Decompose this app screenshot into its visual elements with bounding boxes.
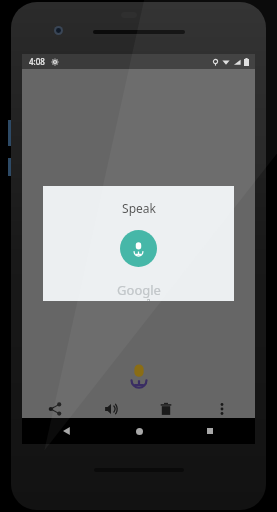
button[interactable]: Share [40,394,70,424]
staticText: 4:08 [29,56,45,67]
button[interactable]: Volume [96,394,126,424]
button[interactable]: Recent apps [199,420,221,442]
button[interactable]: Home [128,420,150,442]
button[interactable]: Delete [151,394,181,424]
button[interactable]: Speak into microphone [120,230,157,267]
staticText: Speak [122,200,156,216]
button[interactable]: Microphone [123,359,155,391]
button[interactable]: Speak [43,186,234,301]
staticText: Google [117,281,161,299]
button[interactable]: Back [56,420,78,442]
button[interactable]: More options [207,394,237,424]
staticText: ગુજરાતી [127,299,151,301]
